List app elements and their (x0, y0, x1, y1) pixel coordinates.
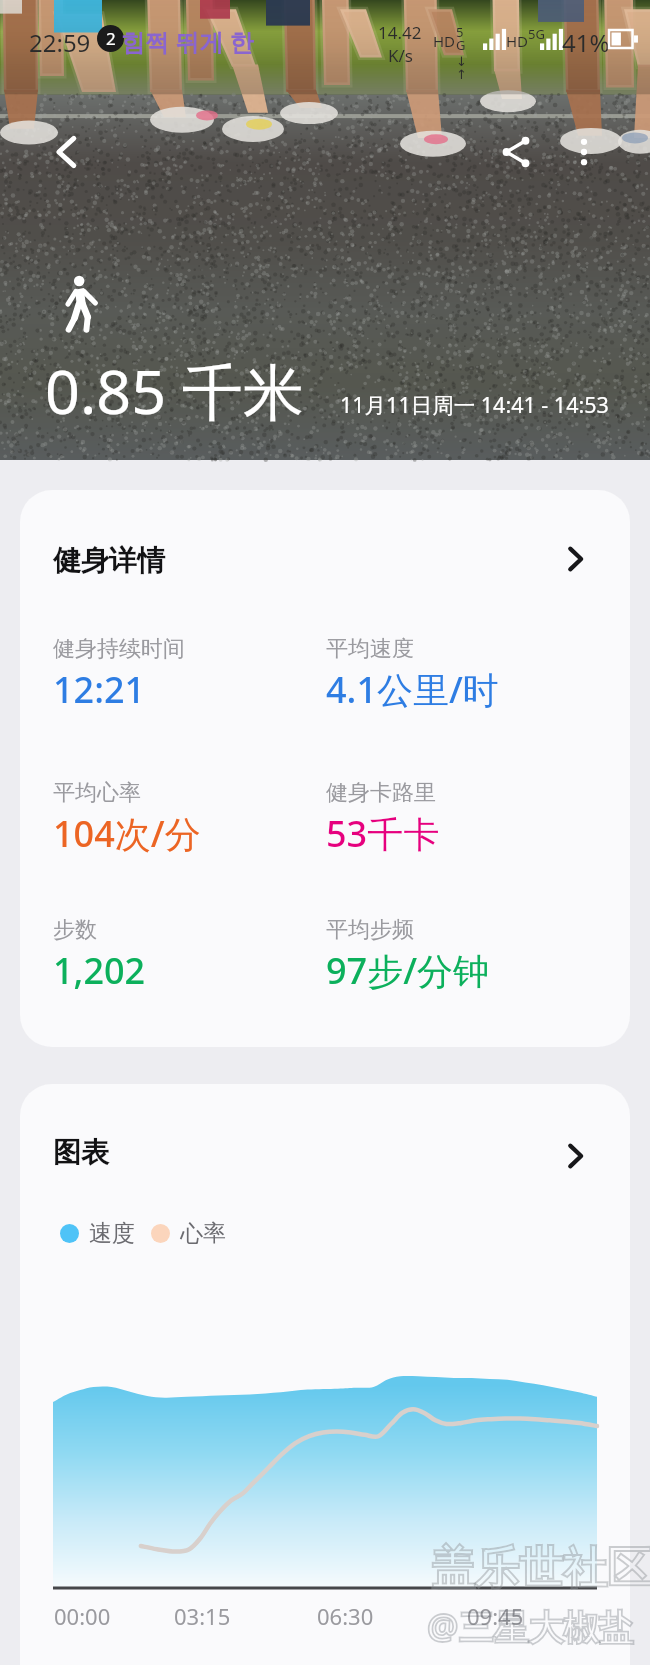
staticText: HD (433, 31, 456, 51)
button[interactable]: More options (553, 121, 615, 183)
staticText: 5G (528, 25, 545, 43)
button[interactable]: Open charts (547, 1128, 603, 1184)
staticText: 平均步频 (326, 916, 414, 944)
staticText: 健身持续时间 (53, 635, 185, 663)
staticText: 盖乐世社区 (431, 1541, 650, 1596)
staticText: 41% (562, 26, 610, 59)
staticText: 0.85 千米 (45, 349, 304, 432)
staticText: 心率 (180, 1219, 226, 1248)
button[interactable]: Share (485, 121, 547, 183)
staticText: 平均心率 (53, 779, 141, 807)
button[interactable]: 图表 (20, 1084, 630, 1665)
button[interactable]: Back (36, 121, 98, 183)
staticText: 5G (456, 23, 472, 54)
button[interactable]: 健身详情 (20, 490, 630, 1047)
staticText: 09:45 (467, 1601, 524, 1631)
staticText: 健身详情 (53, 543, 165, 578)
staticText: ↓↑ (456, 54, 472, 82)
staticText: 00:00 (54, 1601, 174, 1631)
staticText: 104次/分 (53, 809, 201, 858)
staticText: 06:30 (317, 1601, 467, 1631)
staticText: 2 (106, 27, 116, 50)
staticText: 图表 (53, 1135, 109, 1170)
staticText: 1,202 (53, 946, 146, 995)
staticText: 22:59 (29, 26, 91, 59)
staticText: 盖乐世社区 (431, 1541, 650, 1596)
staticText: 97步/分钟 (326, 946, 490, 995)
staticText: 14.42 (378, 21, 422, 44)
staticText: 速度 (89, 1219, 135, 1248)
staticText: K/s (388, 44, 413, 67)
staticText: 平均速度 (326, 635, 414, 663)
staticText: 健身卡路里 (326, 779, 436, 807)
staticText: 4.1公里/时 (326, 665, 499, 714)
staticText: 힘쩍 뛰게 한 (121, 25, 254, 58)
staticText: 12:21 (53, 665, 146, 714)
staticText: 53千卡 (326, 809, 440, 858)
button[interactable]: Open fitness details (547, 531, 603, 587)
staticText: 03:15 (174, 1601, 317, 1631)
staticText: HD (506, 31, 529, 51)
staticText: @三星大椒盐 (427, 1603, 634, 1651)
staticText: 步数 (53, 916, 97, 944)
staticText: 11月11日周一 14:41 - 14:53 (340, 390, 609, 419)
